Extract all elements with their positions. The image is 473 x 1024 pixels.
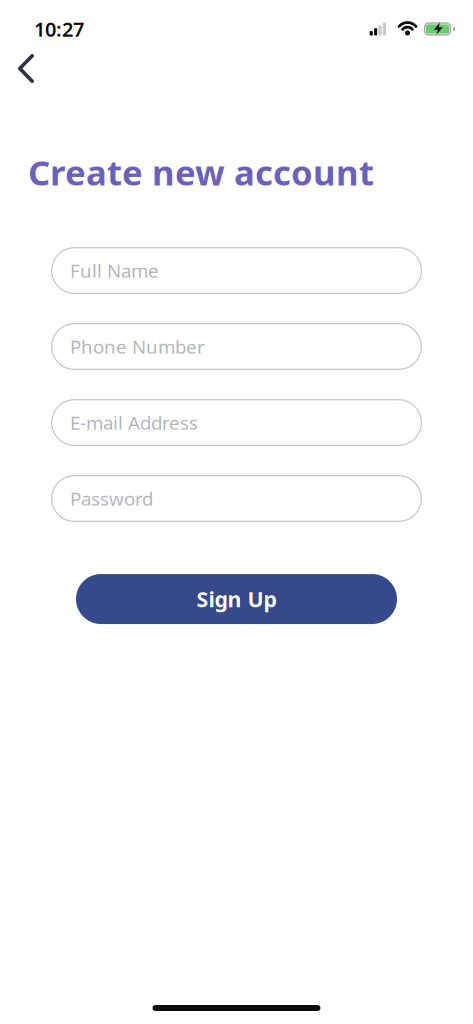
button[interactable]: Phone Number bbox=[51, 323, 422, 370]
staticText: Phone Number bbox=[70, 334, 205, 359]
staticText: E-mail Address bbox=[70, 410, 198, 435]
button[interactable]: Full Name bbox=[51, 247, 422, 294]
button[interactable]: Password bbox=[51, 475, 422, 522]
staticText: Sign Up bbox=[196, 585, 276, 613]
staticText: Full Name bbox=[70, 258, 159, 283]
staticText: 10:27 bbox=[34, 16, 84, 42]
staticText: Password bbox=[70, 486, 153, 511]
button[interactable]: Sign Up bbox=[76, 574, 397, 624]
button[interactable]: E-mail Address bbox=[51, 399, 422, 446]
button[interactable]: Back bbox=[0, 54, 34, 83]
staticText: Create new account bbox=[28, 149, 374, 195]
